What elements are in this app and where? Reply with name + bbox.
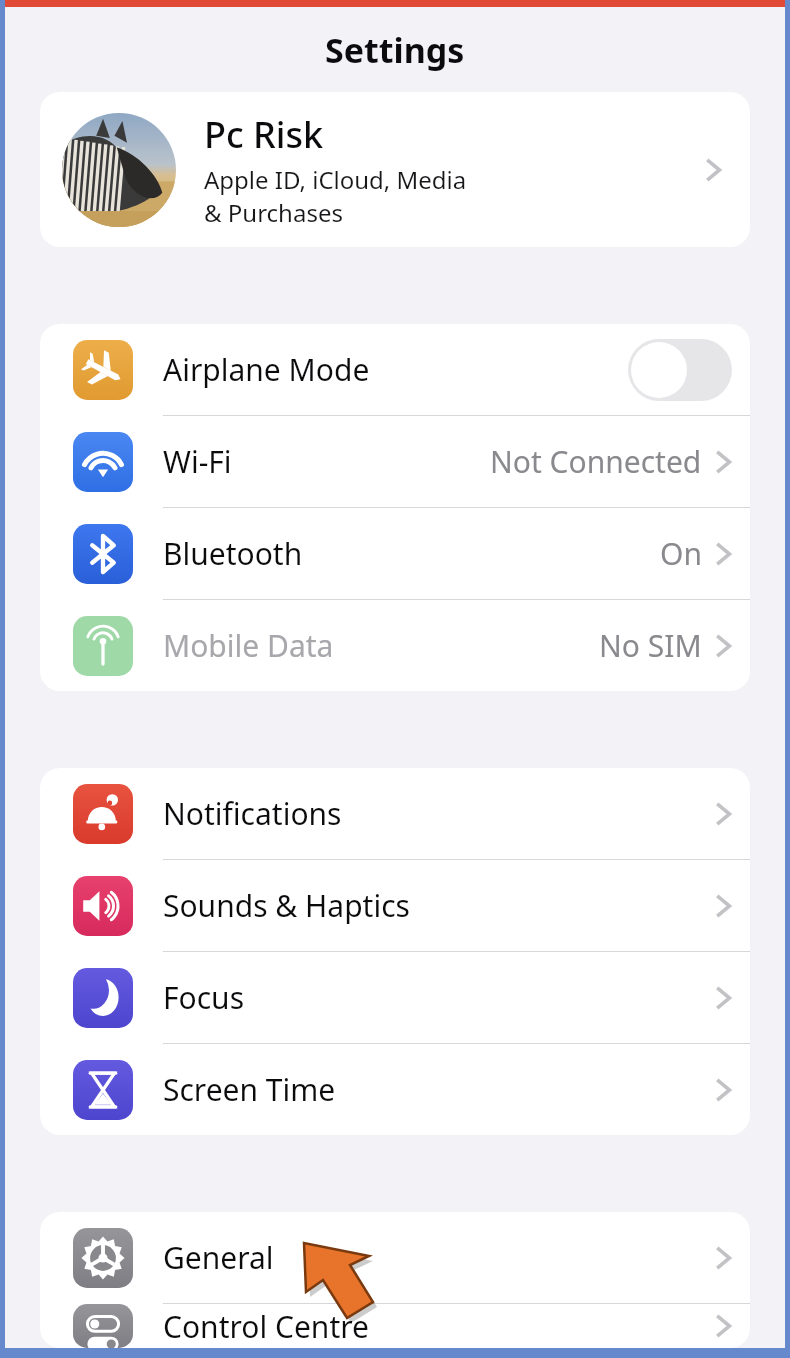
staticText: Screen Time — [163, 1069, 714, 1110]
staticText: On — [660, 533, 702, 574]
staticText: Sounds & Haptics — [163, 885, 714, 926]
button[interactable]: Focus — [40, 952, 750, 1044]
staticText: Bluetooth — [163, 533, 660, 574]
button[interactable]: Bluetooth — [40, 508, 750, 600]
staticText: Settings — [325, 27, 465, 73]
staticText: Mobile Data — [163, 625, 599, 666]
button[interactable]: General — [40, 1212, 750, 1304]
staticText: Wi-Fi — [163, 441, 490, 482]
staticText: Pc Risk — [204, 110, 324, 159]
button[interactable]: Airplane Mode — [40, 324, 750, 416]
button[interactable]: Sounds & Haptics — [40, 860, 750, 952]
button[interactable]: Wi-Fi — [40, 416, 750, 508]
staticText: Control Centre — [163, 1306, 714, 1347]
button[interactable]: Airplane Mode toggle, off — [628, 339, 732, 401]
button[interactable]: Screen Time — [40, 1044, 750, 1135]
staticText: Notifications — [163, 793, 714, 834]
button[interactable]: Notifications — [40, 768, 750, 860]
staticText: Focus — [163, 977, 714, 1018]
button[interactable]: Control Centre — [40, 1304, 750, 1348]
button[interactable]: Mobile Data — [40, 600, 750, 691]
staticText: No SIM — [599, 625, 702, 666]
staticText: Apple ID, iCloud, Media & Purchases — [204, 163, 467, 229]
button[interactable]: Pc Risk — [40, 92, 750, 247]
staticText: Not Connected — [490, 441, 702, 482]
staticText: General — [163, 1237, 714, 1278]
staticText: Airplane Mode — [163, 349, 628, 390]
